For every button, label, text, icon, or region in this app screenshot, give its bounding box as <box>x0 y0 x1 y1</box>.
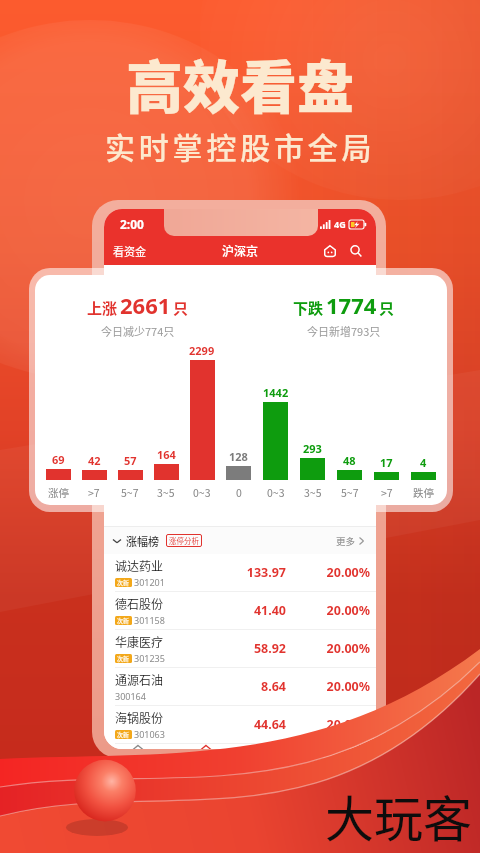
button[interactable]: 更多 <box>334 532 366 550</box>
staticText: 看资金 <box>113 243 146 259</box>
staticText: 次新 <box>117 654 130 663</box>
button[interactable]: 行情 <box>172 744 240 749</box>
button[interactable]: 看资金 <box>111 239 148 263</box>
staticText: 更多 <box>336 534 356 548</box>
staticText: 128 <box>229 449 248 464</box>
staticText: 4G <box>334 218 346 230</box>
staticText: 20.00% <box>322 716 370 733</box>
staticText: 今日减少774只 <box>101 323 175 339</box>
staticText: 0~3 <box>193 485 211 500</box>
staticText: 69 <box>52 452 65 467</box>
staticText: 0 <box>236 485 242 500</box>
staticText: 20.00% <box>322 678 370 695</box>
other: 首页 <box>131 744 145 749</box>
staticText: 德石股份 <box>115 595 164 612</box>
staticText: 海锅股份 <box>115 709 164 726</box>
staticText: 8.64 <box>236 678 286 695</box>
staticText: 293 <box>303 441 322 456</box>
button[interactable]: 华康医疗 <box>104 630 376 667</box>
button[interactable]: 涨停分析 <box>166 534 202 547</box>
staticText: 44.64 <box>236 716 286 733</box>
staticText: >7 <box>381 485 393 500</box>
staticText: 58.92 <box>236 640 286 657</box>
staticText: 1774 <box>326 290 377 320</box>
staticText: 48 <box>343 453 356 468</box>
staticText: 5~7 <box>341 485 359 500</box>
staticText: 华康医疗 <box>115 633 164 650</box>
staticText: 20.00% <box>322 602 370 619</box>
staticText: 4 <box>420 455 427 470</box>
button[interactable]: Assistant <box>322 243 338 259</box>
staticText: 20.00% <box>322 640 370 657</box>
button[interactable]: 诚达药业 <box>104 554 376 591</box>
staticText: 41.40 <box>236 602 286 619</box>
staticText: 大玩客 <box>325 780 473 851</box>
staticText: 通源石油 <box>115 671 164 688</box>
staticText: 今日新增793只 <box>307 323 381 339</box>
staticText: 沪深京 <box>222 242 259 259</box>
staticText: 2299 <box>189 343 215 358</box>
staticText: 涨停 <box>48 485 69 500</box>
staticText: 涨幅榜 <box>126 533 159 549</box>
staticText: 301158 <box>134 614 165 626</box>
staticText: 42 <box>88 453 101 468</box>
staticText: 1442 <box>263 385 289 400</box>
staticText: >7 <box>88 485 100 500</box>
staticText: 次新 <box>117 616 130 625</box>
staticText: 高效看盘 <box>126 42 354 125</box>
staticText: 3~5 <box>304 485 322 500</box>
staticText: 20.00% <box>322 564 370 581</box>
staticText: 301235 <box>134 652 165 664</box>
staticText: 164 <box>157 447 176 462</box>
button[interactable]: 我的 <box>308 744 376 749</box>
staticText: 上涨 <box>87 297 118 319</box>
staticText: 诚达药业 <box>115 557 164 574</box>
staticText: 2661 <box>120 290 171 320</box>
other: 我的 <box>335 744 349 749</box>
staticText: 跌停 <box>413 485 434 500</box>
staticText: 300164 <box>115 690 146 702</box>
staticText: 17 <box>380 455 393 470</box>
staticText: 3~5 <box>157 485 175 500</box>
staticText: 2:00 <box>120 216 144 232</box>
button[interactable]: 首页 <box>104 744 172 749</box>
button[interactable]: 通源石油 <box>104 668 376 705</box>
staticText: 涨停分析 <box>169 535 199 546</box>
staticText: 301201 <box>134 576 165 588</box>
staticText: 301063 <box>134 728 165 740</box>
staticText: 下跌 <box>293 297 324 319</box>
button[interactable]: Search <box>348 243 364 259</box>
staticText: 0~3 <box>267 485 285 500</box>
staticText: 只 <box>173 297 189 319</box>
staticText: 只 <box>379 297 395 319</box>
staticText: 5~7 <box>121 485 139 500</box>
staticText: 实时掌控股市全局 <box>105 124 376 167</box>
button[interactable]: 德石股份 <box>104 592 376 629</box>
staticText: 次新 <box>117 578 130 587</box>
staticText: 57 <box>124 453 137 468</box>
button[interactable]: 交易 <box>240 744 308 749</box>
staticText: 次新 <box>117 730 130 739</box>
other: 行情 <box>199 744 213 749</box>
button[interactable]: 海锅股份 <box>104 706 376 743</box>
staticText: 133.97 <box>236 564 286 581</box>
